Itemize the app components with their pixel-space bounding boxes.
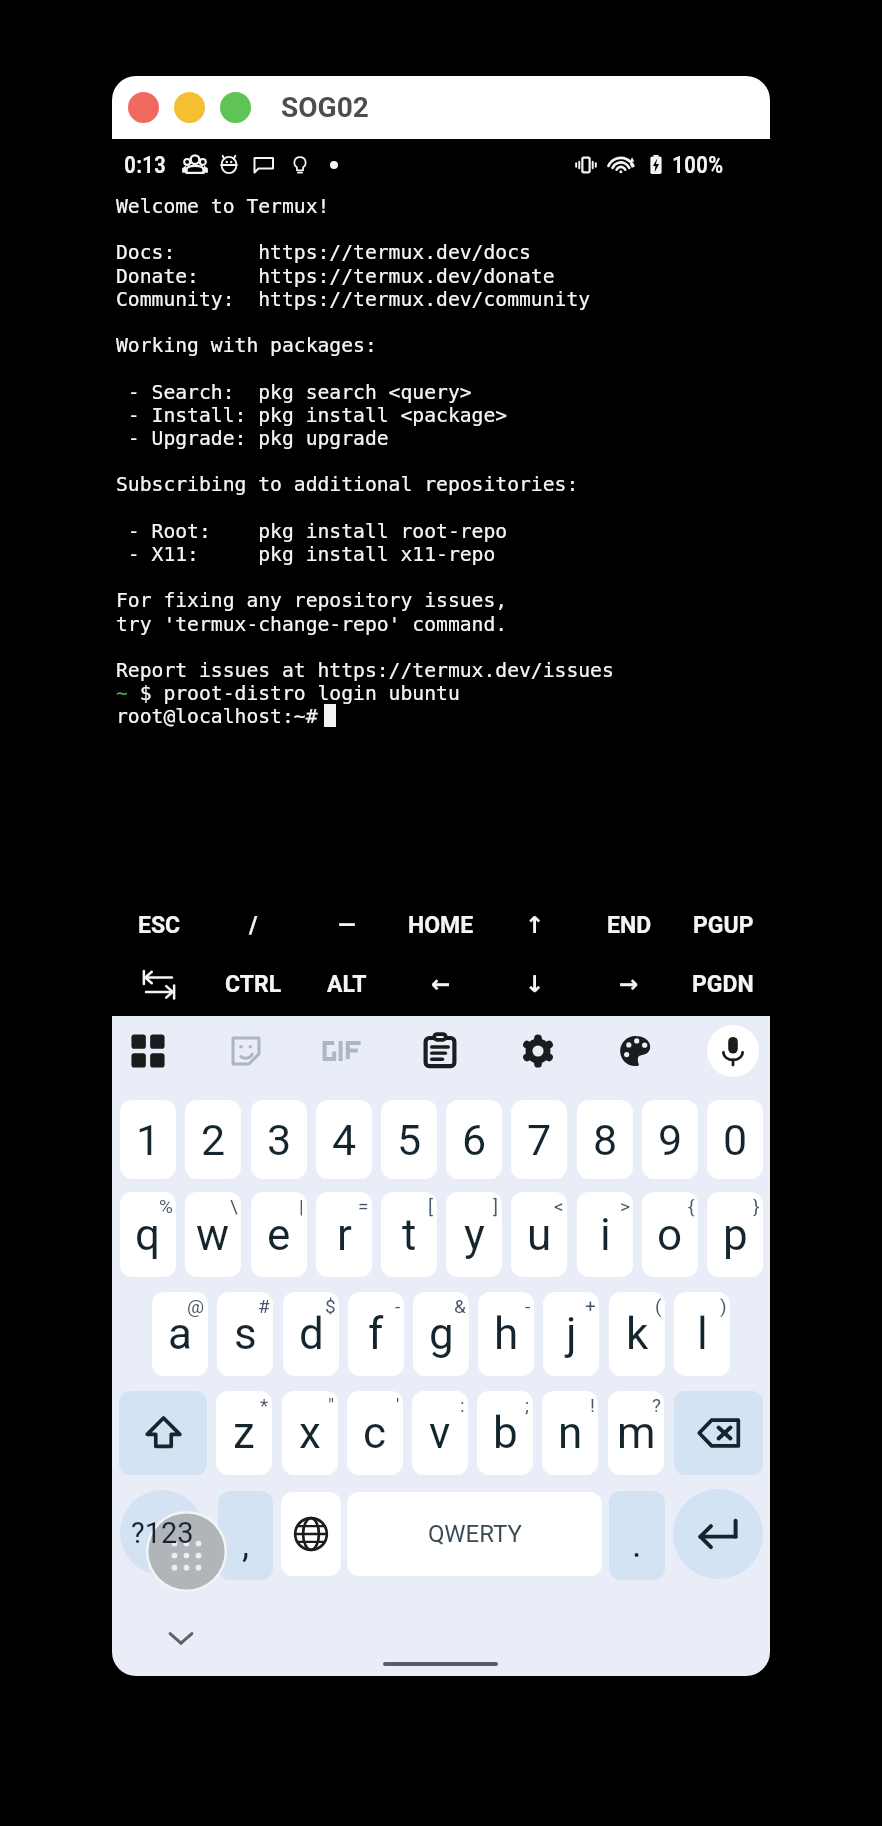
- staticText: 2: [201, 1115, 226, 1165]
- button[interactable]: Close window: [128, 92, 159, 123]
- staticText: ~: [116, 682, 128, 705]
- button[interactable]: Tab: [112, 955, 206, 1013]
- button[interactable]: Enter: [673, 1489, 763, 1579]
- button[interactable]: Themes: [600, 1015, 672, 1087]
- staticText: 6: [462, 1115, 487, 1165]
- button[interactable]: ←: [394, 955, 488, 1013]
- button[interactable]: Hide keyboard: [155, 1612, 207, 1664]
- button[interactable]: g: [413, 1292, 469, 1376]
- button[interactable]: PGUP: [676, 896, 770, 955]
- staticText: i: [600, 1209, 611, 1261]
- button[interactable]: PGDN: [676, 955, 770, 1013]
- staticText: u: [527, 1209, 552, 1261]
- button[interactable]: /: [206, 896, 300, 955]
- button[interactable]: c: [347, 1391, 403, 1475]
- button[interactable]: 7: [511, 1100, 567, 1179]
- staticText: |: [299, 1195, 304, 1217]
- button[interactable]: ALT: [300, 955, 394, 1013]
- button[interactable]: k: [609, 1292, 665, 1376]
- button[interactable]: o: [642, 1192, 698, 1277]
- staticText: - X11: pkg install x11-repo: [116, 543, 496, 566]
- button[interactable]: 4: [316, 1100, 372, 1179]
- button[interactable]: Backspace: [674, 1391, 763, 1475]
- staticText: ': [396, 1394, 400, 1416]
- button[interactable]: Shift: [119, 1391, 207, 1475]
- button[interactable]: 3: [251, 1100, 307, 1179]
- button[interactable]: Change language: [281, 1492, 341, 1576]
- staticText: $: [325, 1295, 336, 1317]
- button[interactable]: h: [478, 1292, 534, 1376]
- button[interactable]: HOME: [394, 896, 488, 955]
- button[interactable]: e: [251, 1192, 307, 1277]
- button[interactable]: Minimize window: [174, 92, 205, 123]
- staticText: 8: [593, 1115, 618, 1165]
- button[interactable]: l: [674, 1292, 730, 1376]
- staticText: ↑: [525, 912, 545, 939]
- staticText: a: [168, 1308, 192, 1360]
- staticText: ;: [525, 1394, 530, 1416]
- staticText: ,: [242, 1524, 250, 1566]
- staticText: 5: [397, 1115, 422, 1165]
- staticText: ?: [652, 1394, 661, 1416]
- button[interactable]: 8: [577, 1100, 633, 1179]
- staticText: s: [234, 1308, 257, 1360]
- button[interactable]: f: [348, 1292, 404, 1376]
- button[interactable]: w: [185, 1192, 241, 1277]
- button[interactable]: q: [120, 1192, 176, 1277]
- staticText: Docs: https://termux.dev/docs: [116, 241, 531, 264]
- button[interactable]: Stickers: [210, 1015, 282, 1087]
- staticText: Community: https://termux.dev/community: [116, 288, 591, 311]
- staticText: ↓: [525, 971, 545, 998]
- button[interactable]: ,: [218, 1491, 273, 1580]
- staticText: ): [720, 1295, 727, 1317]
- button[interactable]: Keyboard layouts: [112, 1015, 184, 1087]
- button[interactable]: ↑: [488, 896, 582, 955]
- staticText: ]: [493, 1195, 499, 1217]
- staticText: f: [368, 1308, 384, 1360]
- button[interactable]: m: [608, 1391, 664, 1475]
- button[interactable]: 9: [642, 1100, 698, 1179]
- button[interactable]: u: [511, 1192, 567, 1277]
- button[interactable]: d: [283, 1292, 339, 1376]
- button[interactable]: n: [542, 1391, 598, 1475]
- button[interactable]: [120, 1490, 204, 1575]
- staticText: CTRL: [225, 971, 282, 998]
- button[interactable]: Settings: [502, 1015, 574, 1087]
- button[interactable]: t: [381, 1192, 437, 1277]
- staticText: Working with packages:: [116, 334, 377, 357]
- button[interactable]: .: [609, 1491, 665, 1580]
- staticText: Donate: https://termux.dev/donate: [116, 265, 555, 288]
- button[interactable]: v: [412, 1391, 468, 1475]
- button[interactable]: j: [543, 1292, 599, 1376]
- staticText: q: [135, 1209, 161, 1261]
- button[interactable]: s: [217, 1292, 273, 1376]
- button[interactable]: y: [446, 1192, 502, 1277]
- button[interactable]: →: [582, 955, 676, 1013]
- button[interactable]: END: [582, 896, 676, 955]
- button[interactable]: ESC: [112, 896, 206, 955]
- button[interactable]: 0: [707, 1100, 763, 1179]
- button[interactable]: b: [477, 1391, 533, 1475]
- staticText: ESC: [138, 912, 181, 939]
- button[interactable]: z: [216, 1391, 272, 1475]
- button[interactable]: i: [577, 1192, 633, 1277]
- button[interactable]: Clipboard: [404, 1015, 476, 1087]
- button[interactable]: Accessibility menu: [146, 1511, 227, 1592]
- button[interactable]: CTRL: [206, 955, 300, 1013]
- button[interactable]: r: [316, 1192, 372, 1277]
- button[interactable]: 5: [381, 1100, 437, 1179]
- button[interactable]: Maximize window: [220, 92, 251, 123]
- button[interactable]: p: [707, 1192, 763, 1277]
- button[interactable]: ↓: [488, 955, 582, 1013]
- button[interactable]: 6: [446, 1100, 502, 1179]
- button[interactable]: a: [152, 1292, 208, 1376]
- button[interactable]: —: [300, 896, 394, 955]
- button[interactable]: 2: [185, 1100, 241, 1179]
- button[interactable]: QWERTY: [347, 1492, 602, 1576]
- staticText: 3: [267, 1115, 292, 1165]
- button[interactable]: Voice input: [697, 1015, 769, 1087]
- button[interactable]: GIF: [307, 1015, 379, 1087]
- button[interactable]: 1: [120, 1100, 176, 1179]
- staticText: ←: [431, 971, 451, 998]
- button[interactable]: x: [282, 1391, 338, 1475]
